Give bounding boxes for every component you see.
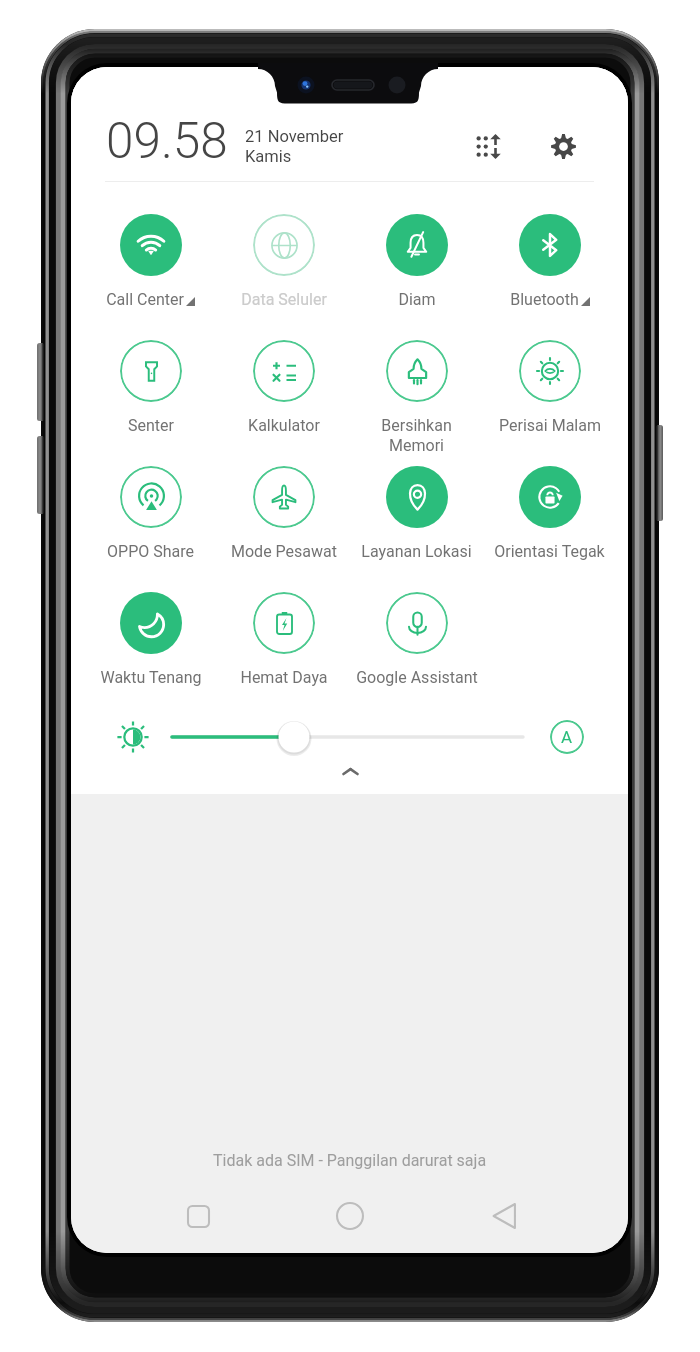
staticText: Google Assistant (356, 668, 478, 687)
button[interactable]: Settings (542, 125, 584, 167)
button[interactable]: Diam (350, 214, 483, 340)
button[interactable]: Home (327, 1193, 373, 1239)
button[interactable]: Senter (84, 340, 217, 466)
button[interactable]: Layanan Lokasi (350, 466, 483, 592)
button[interactable]: Back (481, 1193, 527, 1239)
button[interactable]: Expand panel (328, 752, 372, 792)
staticText: Waktu Tenang (100, 668, 202, 687)
button[interactable]: Kalkulator (217, 340, 350, 466)
button[interactable]: Mode Pesawat (217, 466, 350, 592)
button[interactable]: Bersihkan Memori (350, 340, 483, 466)
staticText: Kamis (245, 147, 292, 166)
button[interactable]: Recent apps (175, 1193, 221, 1239)
staticText: Bluetooth (510, 290, 579, 309)
button[interactable]: Google Assistant (350, 592, 483, 718)
staticText: Senter (128, 416, 174, 435)
button[interactable]: Bluetooth (483, 214, 616, 340)
staticText: Hemat Daya (240, 668, 328, 687)
staticText: Bersihkan Memori (381, 416, 452, 455)
staticText: Perisai Malam (499, 416, 601, 435)
staticText: Layanan Lokasi (361, 542, 472, 561)
button[interactable]: Edit quick settings (467, 125, 509, 167)
staticText: 21 November (245, 127, 344, 146)
staticText: 09.58 (106, 112, 228, 170)
button[interactable]: Orientasi Tegak (483, 466, 616, 592)
staticText: A (561, 727, 573, 747)
staticText: OPPO Share (107, 542, 194, 561)
staticText: Kalkulator (248, 416, 320, 435)
staticText: Call Center (106, 290, 184, 309)
button[interactable]: Waktu Tenang (84, 592, 217, 718)
staticText: Orientasi Tegak (494, 542, 605, 561)
button[interactable]: OPPO Share (84, 466, 217, 592)
button[interactable]: Perisai Malam (483, 340, 616, 466)
button[interactable]: Call Center (84, 214, 217, 340)
button[interactable]: Data Seluler (217, 214, 350, 340)
button[interactable]: Auto brightness (550, 720, 584, 754)
staticText: Data Seluler (241, 290, 327, 309)
button[interactable]: Hemat Daya (217, 592, 350, 718)
staticText: Diam (398, 290, 436, 309)
staticText: Tidak ada SIM - Panggilan darurat saja (213, 1151, 487, 1170)
staticText: Mode Pesawat (231, 542, 337, 561)
button[interactable]: Brightness (118, 722, 148, 752)
